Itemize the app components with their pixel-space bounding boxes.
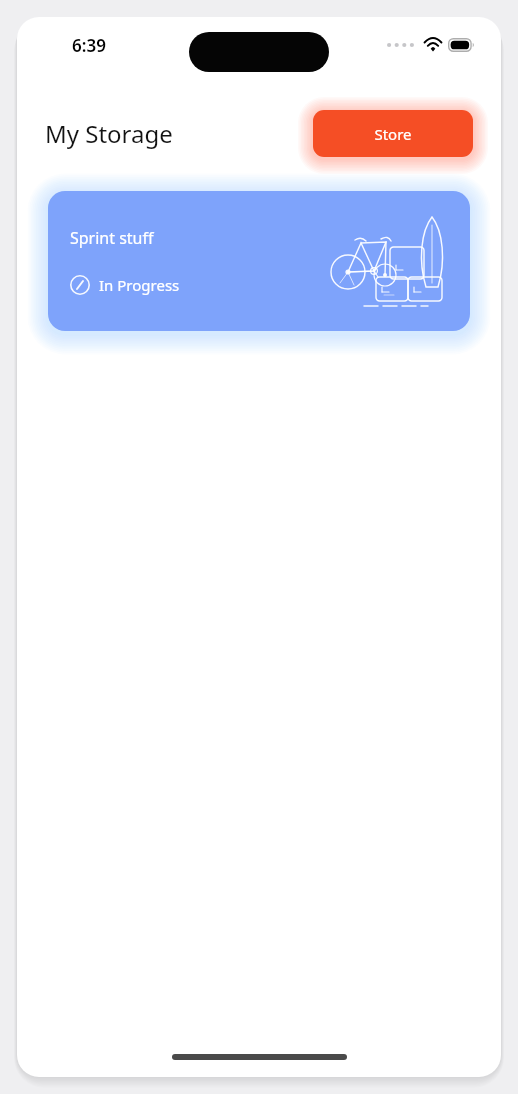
staticText: My Storage (45, 117, 173, 150)
staticText: 6:39 (72, 34, 106, 57)
staticText: Sprint stuff (70, 227, 154, 249)
staticText: In Progress (99, 275, 180, 295)
button[interactable]: Sprint stuff (48, 191, 470, 331)
button[interactable]: Store (313, 110, 473, 157)
staticText: Store (374, 124, 412, 144)
